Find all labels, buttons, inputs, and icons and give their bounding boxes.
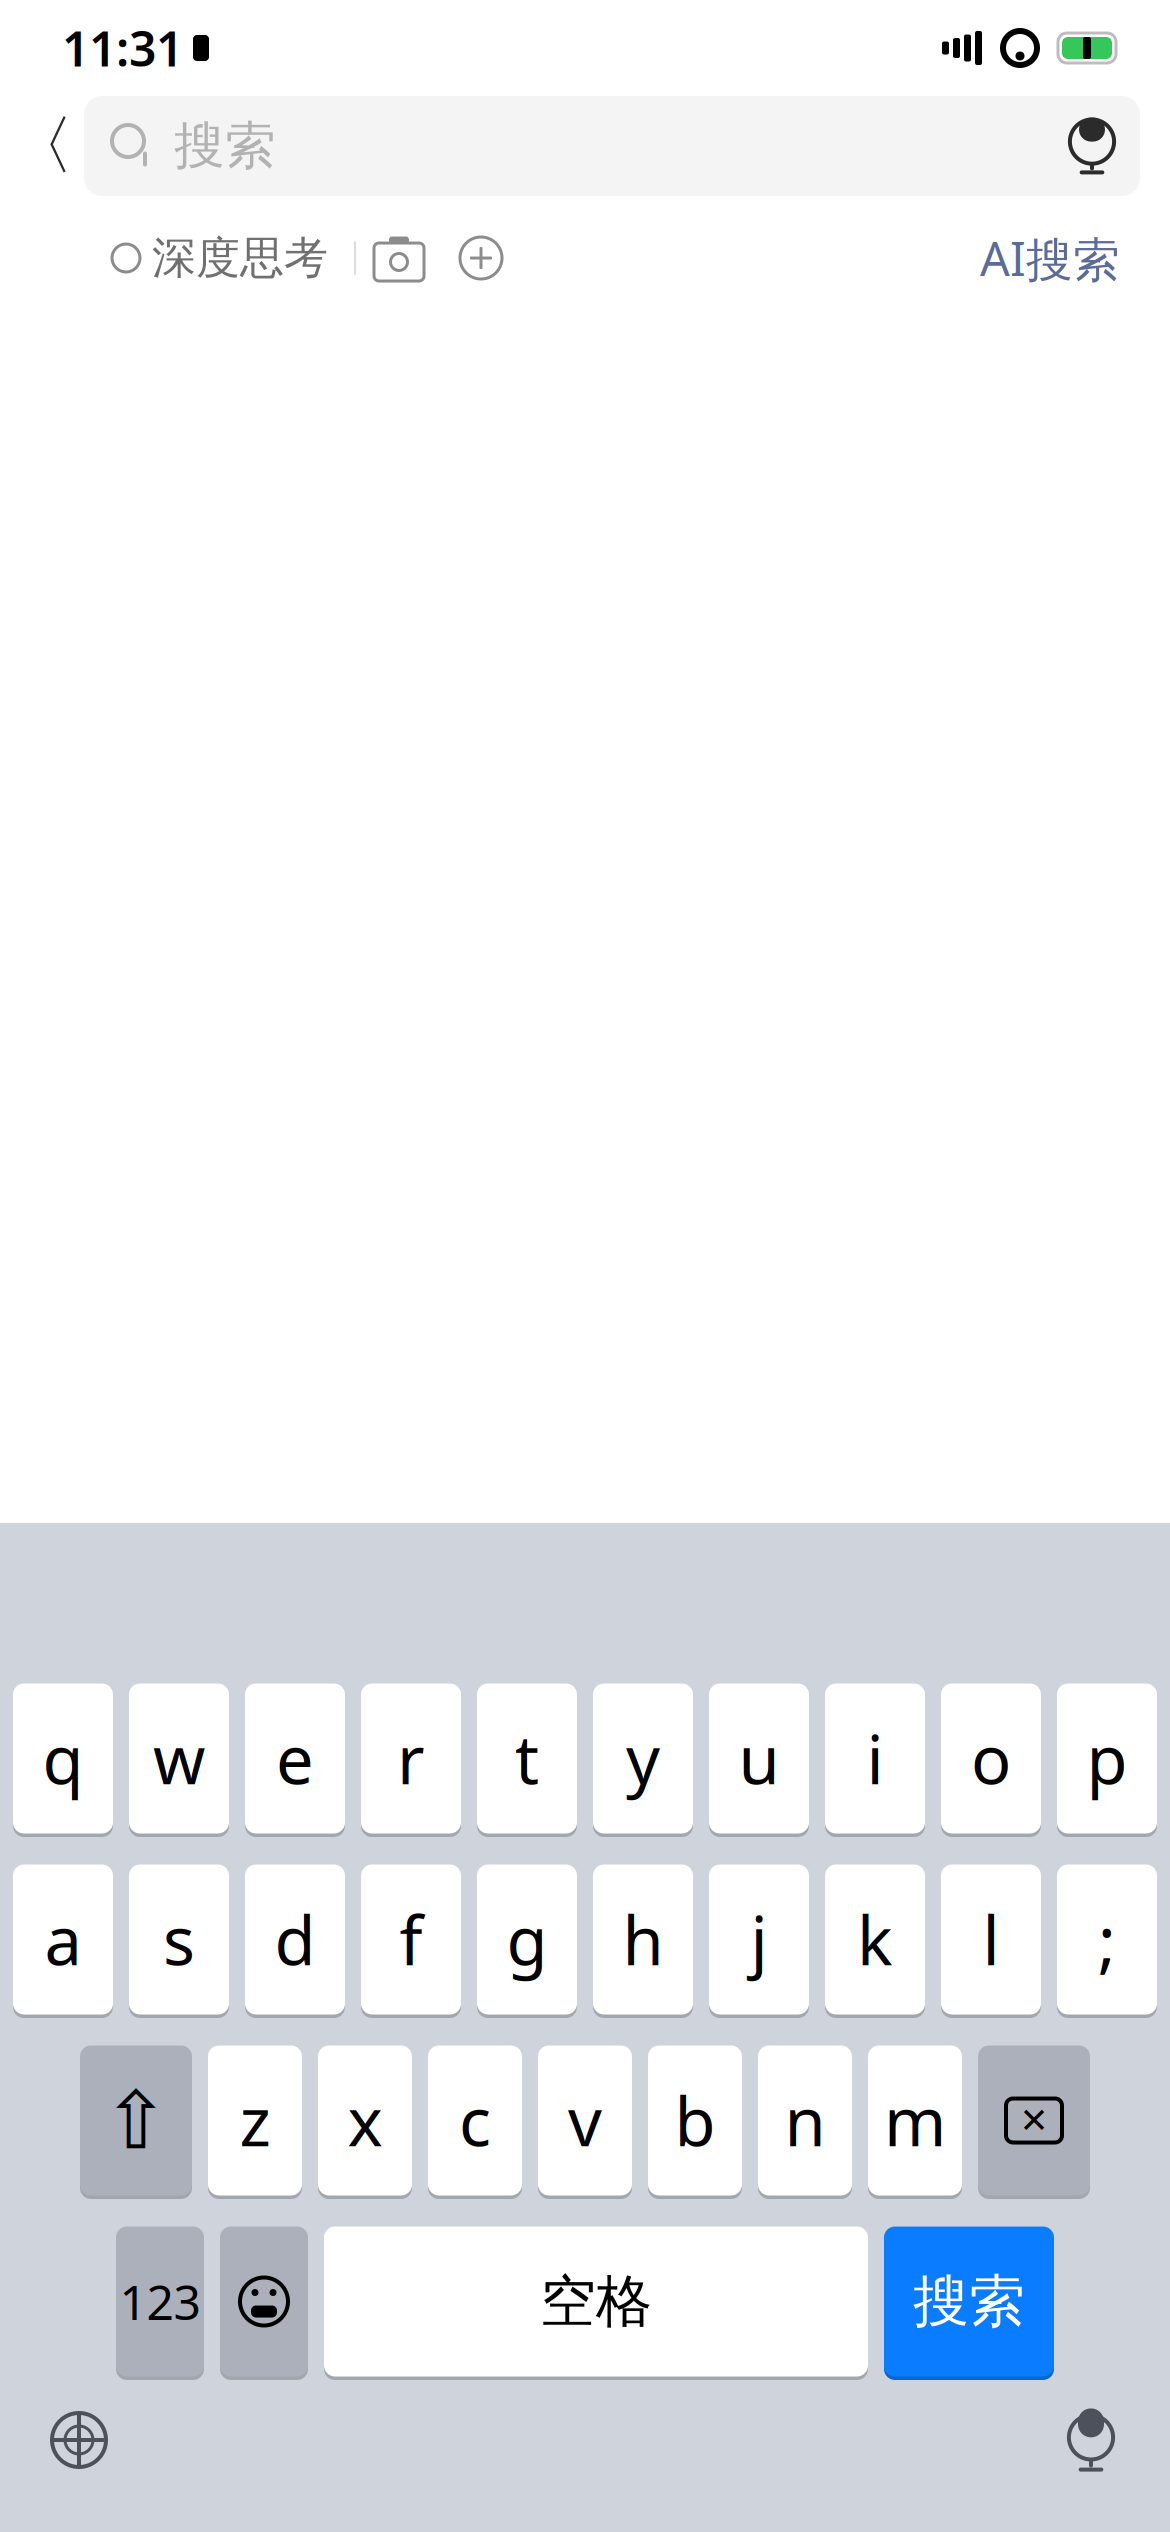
- staticText: e: [276, 1714, 314, 1803]
- staticText: t: [515, 1714, 539, 1803]
- button[interactable]: f: [361, 1861, 461, 2018]
- staticText: ;: [1098, 1895, 1116, 1984]
- button[interactable]: Switch keyboard: [24, 2390, 134, 2490]
- button[interactable]: u: [709, 1680, 809, 1837]
- staticText: a: [44, 1895, 81, 1984]
- staticText: ⇧: [102, 2075, 169, 2166]
- staticText: y: [626, 1714, 660, 1803]
- button[interactable]: g: [477, 1861, 577, 2018]
- button[interactable]: Dictation: [1036, 2390, 1146, 2490]
- staticText: w: [153, 1714, 205, 1803]
- staticText: z: [239, 2076, 270, 2165]
- staticText: 123: [119, 2270, 200, 2333]
- button[interactable]: m: [868, 2042, 962, 2199]
- button[interactable]: p: [1057, 1680, 1157, 1837]
- staticText: q: [42, 1714, 83, 1803]
- staticText: p: [1086, 1714, 1127, 1803]
- staticText: u: [738, 1714, 779, 1803]
- staticText: d: [274, 1895, 315, 1984]
- staticText: 〈: [10, 107, 74, 185]
- button[interactable]: 空格: [324, 2223, 868, 2380]
- button[interactable]: h: [593, 1861, 693, 2018]
- button[interactable]: Emoji: [220, 2223, 308, 2380]
- button[interactable]: k: [825, 1861, 925, 2018]
- button[interactable]: e: [245, 1680, 345, 1837]
- staticText: x: [347, 2076, 382, 2165]
- staticText: c: [459, 2076, 491, 2165]
- staticText: m: [884, 2076, 946, 2165]
- button[interactable]: x: [318, 2042, 412, 2199]
- button[interactable]: More options: [442, 225, 520, 291]
- staticText: 搜索: [174, 115, 276, 177]
- button[interactable]: ;: [1057, 1861, 1157, 2018]
- button[interactable]: y: [593, 1680, 693, 1837]
- staticText: n: [784, 2076, 825, 2165]
- staticText: i: [866, 1714, 883, 1803]
- button[interactable]: Search by image: [356, 225, 442, 291]
- button[interactable]: q: [13, 1680, 113, 1837]
- staticText: g: [506, 1895, 547, 1984]
- button[interactable]: Delete: [978, 2042, 1090, 2199]
- button[interactable]: i: [825, 1680, 925, 1837]
- button[interactable]: Shift: [80, 2042, 192, 2199]
- button[interactable]: l: [941, 1861, 1041, 2018]
- button[interactable]: j: [709, 1861, 809, 2018]
- button[interactable]: s: [129, 1861, 229, 2018]
- button[interactable]: a: [13, 1861, 113, 2018]
- staticText: s: [163, 1895, 195, 1984]
- button[interactable]: n: [758, 2042, 852, 2199]
- button[interactable]: Numbers: [116, 2223, 204, 2380]
- staticText: 空格: [540, 2267, 652, 2336]
- button[interactable]: t: [477, 1680, 577, 1837]
- button[interactable]: Back: [0, 96, 84, 196]
- button[interactable]: o: [941, 1680, 1041, 1837]
- button[interactable]: r: [361, 1680, 461, 1837]
- staticText: j: [750, 1895, 767, 1984]
- staticText: ✕: [1019, 2101, 1048, 2140]
- button[interactable]: b: [648, 2042, 742, 2199]
- button[interactable]: c: [428, 2042, 522, 2199]
- button[interactable]: w: [129, 1680, 229, 1837]
- staticText: o: [971, 1714, 1011, 1803]
- button[interactable]: v: [538, 2042, 632, 2199]
- button[interactable]: 搜索: [884, 2223, 1054, 2380]
- staticText: l: [982, 1895, 999, 1984]
- button[interactable]: 深度思考: [112, 225, 328, 291]
- staticText: AI搜索: [980, 227, 1120, 289]
- button[interactable]: AI搜索: [972, 225, 1128, 291]
- button[interactable]: d: [245, 1861, 345, 2018]
- staticText: b: [674, 2076, 715, 2165]
- staticText: r: [397, 1714, 425, 1803]
- button[interactable]: Voice search: [1044, 96, 1140, 196]
- staticText: 深度思考: [152, 231, 328, 285]
- button[interactable]: z: [208, 2042, 302, 2199]
- staticText: k: [857, 1895, 893, 1984]
- staticText: v: [568, 2076, 602, 2165]
- staticText: 11:31: [62, 16, 183, 80]
- staticText: h: [622, 1895, 663, 1984]
- staticText: f: [399, 1895, 422, 1984]
- staticText: 搜索: [913, 2267, 1025, 2336]
